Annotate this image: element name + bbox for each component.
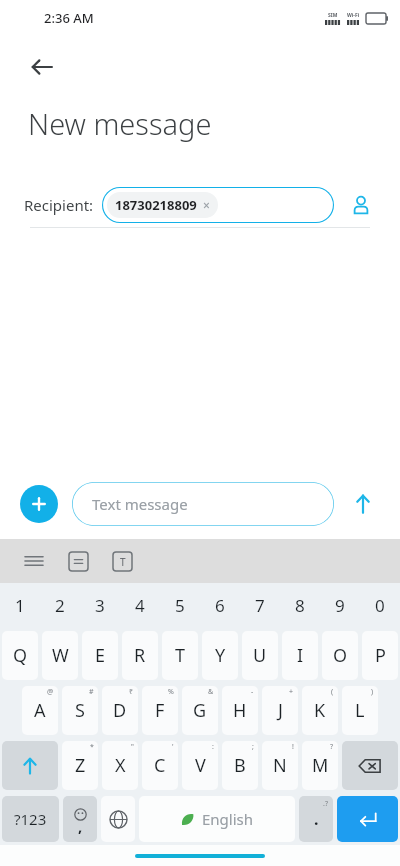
staticText: ₹ bbox=[129, 687, 134, 697]
button[interactable]: K bbox=[302, 686, 338, 735]
staticText: R bbox=[134, 643, 146, 668]
staticText: ?123 bbox=[14, 809, 47, 829]
staticText: . bbox=[314, 808, 319, 830]
staticText: A bbox=[34, 698, 46, 723]
button[interactable]: ?123 bbox=[2, 796, 59, 842]
staticText: 18730218809 bbox=[115, 196, 197, 214]
button[interactable]: 18730218809 bbox=[102, 187, 334, 223]
staticText: Recipient: bbox=[24, 195, 94, 215]
staticText: 2 bbox=[55, 594, 65, 617]
button[interactable]: L bbox=[342, 686, 378, 735]
staticText: SIM bbox=[328, 12, 338, 19]
staticText: 8 bbox=[295, 594, 305, 617]
button[interactable]: 6 bbox=[200, 583, 240, 628]
staticText: ! bbox=[292, 742, 294, 752]
staticText: V bbox=[195, 753, 206, 778]
staticText: B bbox=[234, 753, 246, 778]
button[interactable]: M bbox=[302, 741, 338, 790]
staticText: W bbox=[52, 643, 69, 668]
staticText: 7 bbox=[255, 594, 265, 617]
staticText: Q bbox=[13, 643, 28, 668]
staticText: 1 bbox=[15, 594, 25, 617]
button[interactable]: J bbox=[262, 686, 298, 735]
staticText: F bbox=[155, 698, 165, 723]
button[interactable]: 4 bbox=[120, 583, 160, 628]
staticText: % bbox=[168, 687, 174, 697]
button[interactable]: Emoji and comma bbox=[63, 796, 97, 842]
staticText: .? bbox=[323, 799, 328, 809]
staticText: ' bbox=[172, 742, 174, 752]
staticText: P bbox=[375, 643, 386, 668]
button[interactable]: G bbox=[182, 686, 218, 735]
button[interactable]: I bbox=[282, 631, 318, 680]
button[interactable]: Clipboard bbox=[62, 545, 94, 577]
button[interactable]: P bbox=[362, 631, 398, 680]
staticText: , bbox=[78, 816, 83, 836]
button[interactable]: W bbox=[42, 631, 78, 680]
button[interactable]: 3 bbox=[80, 583, 120, 628]
button[interactable]: V bbox=[182, 741, 218, 790]
button[interactable]: 8 bbox=[280, 583, 320, 628]
button[interactable]: Attach bbox=[20, 485, 58, 523]
staticText: X bbox=[115, 753, 126, 778]
staticText: × bbox=[203, 197, 210, 213]
button[interactable]: X bbox=[102, 741, 138, 790]
button[interactable]: U bbox=[242, 631, 278, 680]
button[interactable]: .? bbox=[299, 796, 333, 842]
button[interactable]: Text message bbox=[72, 482, 334, 526]
staticText: C bbox=[154, 753, 166, 778]
button[interactable]: H bbox=[222, 686, 258, 735]
button[interactable]: D bbox=[102, 686, 138, 735]
button[interactable]: Enter bbox=[337, 796, 398, 842]
staticText: U bbox=[253, 643, 267, 668]
button[interactable]: F bbox=[142, 686, 178, 735]
button[interactable]: A bbox=[22, 686, 58, 735]
staticText: Y bbox=[215, 643, 226, 668]
button[interactable]: Q bbox=[2, 631, 38, 680]
staticText: 3 bbox=[95, 594, 105, 617]
other: Emoji and comma bbox=[63, 796, 97, 842]
staticText: L bbox=[355, 698, 365, 723]
button[interactable]: Backspace bbox=[342, 741, 398, 790]
button[interactable]: Text editing bbox=[106, 545, 138, 577]
button[interactable]: R bbox=[122, 631, 158, 680]
button[interactable]: T bbox=[162, 631, 198, 680]
staticText: # bbox=[89, 687, 94, 697]
button[interactable]: O bbox=[322, 631, 358, 680]
staticText: 2:36 AM bbox=[44, 9, 94, 27]
staticText: " bbox=[131, 742, 134, 752]
button[interactable]: 9 bbox=[320, 583, 360, 628]
button[interactable]: 1 bbox=[0, 583, 40, 628]
button[interactable]: Shift bbox=[2, 741, 58, 790]
button[interactable]: E bbox=[82, 631, 118, 680]
staticText: Z bbox=[75, 753, 86, 778]
button[interactable]: 5 bbox=[160, 583, 200, 628]
button[interactable]: B bbox=[222, 741, 258, 790]
button[interactable]: 7 bbox=[240, 583, 280, 628]
staticText: N bbox=[273, 753, 287, 778]
button[interactable]: S bbox=[62, 686, 98, 735]
button[interactable]: Menu bbox=[18, 545, 50, 577]
staticText: 4 bbox=[135, 594, 145, 617]
button[interactable]: Add contact bbox=[346, 190, 376, 220]
staticText: E bbox=[95, 643, 106, 668]
button[interactable]: C bbox=[142, 741, 178, 790]
staticText: Text message bbox=[92, 494, 188, 514]
button[interactable]: Z bbox=[62, 741, 98, 790]
staticText: T bbox=[175, 643, 186, 668]
button[interactable]: 2 bbox=[40, 583, 80, 628]
button[interactable]: 0 bbox=[360, 583, 400, 628]
staticText: New message bbox=[28, 104, 212, 143]
staticText: ( bbox=[331, 687, 334, 697]
staticText: I bbox=[297, 643, 304, 668]
staticText: J bbox=[278, 698, 283, 723]
button[interactable]: Y bbox=[202, 631, 238, 680]
button[interactable]: Change language bbox=[101, 796, 135, 842]
button[interactable]: English bbox=[139, 796, 295, 842]
button[interactable]: Send bbox=[346, 487, 380, 521]
staticText: ) bbox=[371, 687, 374, 697]
button[interactable]: N bbox=[262, 741, 298, 790]
button[interactable]: Back bbox=[22, 47, 62, 87]
staticText: Wi-Fi bbox=[347, 12, 360, 19]
staticText: M bbox=[312, 753, 329, 778]
